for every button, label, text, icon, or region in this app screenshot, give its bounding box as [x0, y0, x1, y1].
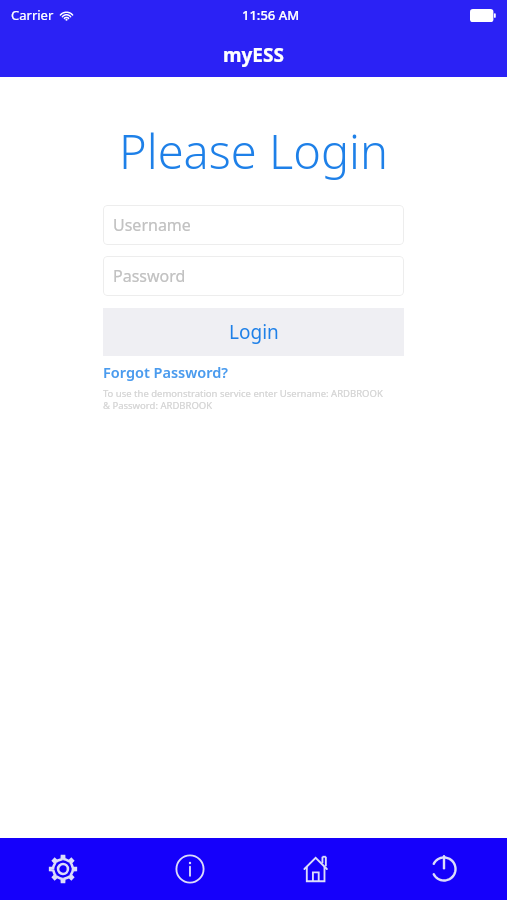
- button[interactable]: Power off: [380, 838, 507, 900]
- button[interactable]: Forgot Password?: [103, 360, 229, 384]
- staticText: Forgot Password?: [103, 362, 229, 382]
- button[interactable]: Login: [103, 308, 404, 356]
- staticText: Password: [113, 265, 186, 287]
- button[interactable]: Password: [103, 256, 404, 296]
- staticText: Username: [113, 214, 191, 236]
- staticText: Login: [229, 319, 279, 345]
- button[interactable]: Information: [126, 838, 253, 900]
- button[interactable]: Settings: [0, 838, 126, 900]
- staticText: Please Login: [0, 119, 507, 183]
- staticText: Carrier: [11, 6, 54, 24]
- staticText: myESS: [223, 42, 284, 68]
- button[interactable]: Home: [253, 838, 380, 900]
- staticText: 11:56 AM: [242, 6, 300, 24]
- staticText: To use the demonstration service enter U…: [103, 387, 383, 412]
- button[interactable]: Username: [103, 205, 404, 245]
